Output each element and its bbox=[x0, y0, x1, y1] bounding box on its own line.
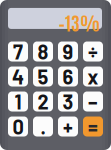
staticText: 2 bbox=[37, 89, 48, 113]
button[interactable]: 9 bbox=[58, 41, 78, 61]
button[interactable]: x bbox=[83, 66, 103, 86]
staticText: 4 bbox=[12, 64, 24, 88]
staticText: – bbox=[88, 89, 98, 113]
button[interactable]: 1 bbox=[8, 91, 28, 111]
button[interactable]: = bbox=[83, 116, 103, 136]
staticText: 0 bbox=[12, 114, 23, 138]
button[interactable]: 7 bbox=[8, 41, 28, 61]
staticText: 3 bbox=[62, 89, 73, 113]
button[interactable]: 6 bbox=[58, 66, 78, 86]
button[interactable]: 0 bbox=[8, 116, 28, 136]
button[interactable]: . bbox=[33, 116, 53, 136]
staticText: 9 bbox=[62, 39, 73, 63]
staticText: ÷ bbox=[88, 39, 98, 63]
staticText: + bbox=[63, 114, 73, 138]
button[interactable]: 3 bbox=[58, 91, 78, 111]
button[interactable]: + bbox=[58, 116, 78, 136]
staticText: x bbox=[87, 64, 98, 88]
button[interactable]: 2 bbox=[33, 91, 53, 111]
staticText: 6 bbox=[62, 64, 73, 88]
button[interactable]: 8 bbox=[33, 41, 53, 61]
staticText: = bbox=[88, 114, 98, 138]
staticText: . bbox=[40, 114, 45, 138]
button[interactable]: ÷ bbox=[83, 41, 103, 61]
button[interactable]: 4 bbox=[8, 66, 28, 86]
button[interactable]: 5 bbox=[33, 66, 53, 86]
button[interactable]: – bbox=[83, 91, 103, 111]
staticText: 1 bbox=[14, 89, 21, 113]
staticText: 7 bbox=[13, 39, 23, 63]
staticText: 5 bbox=[37, 64, 48, 88]
staticText: −13% bbox=[59, 10, 100, 34]
staticText: 8 bbox=[37, 39, 48, 63]
